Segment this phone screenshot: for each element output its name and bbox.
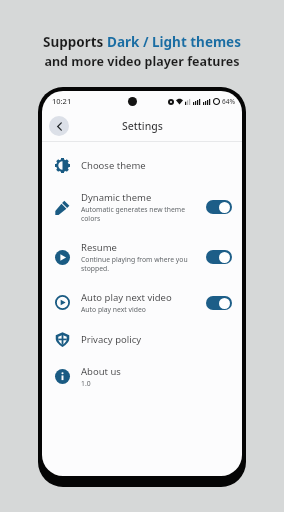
staticText: About us	[81, 365, 121, 378]
staticText: 10:21	[52, 96, 72, 106]
staticText: Privacy policy	[81, 333, 142, 346]
button[interactable]: Auto play next video	[42, 282, 242, 323]
button[interactable]: About us	[42, 356, 242, 397]
staticText: Auto play next video	[81, 291, 172, 304]
button[interactable]: Toggle setting	[206, 250, 232, 264]
button[interactable]: Privacy policy	[42, 323, 242, 356]
staticText: Choose theme	[81, 159, 146, 172]
staticText: and more video player features	[44, 53, 240, 70]
staticText: Settings	[122, 119, 163, 133]
staticText: Dark / Light themes	[107, 33, 241, 51]
button[interactable]: Back	[49, 116, 69, 136]
staticText: 64%	[222, 97, 235, 106]
button[interactable]: Dynamic theme	[42, 182, 242, 232]
button[interactable]: Resume	[42, 232, 242, 282]
staticText: Auto play next video	[81, 305, 146, 314]
staticText: Resume	[81, 241, 117, 254]
button[interactable]: Toggle setting	[206, 200, 232, 214]
staticText: Continue playing from where you stopped.	[81, 255, 188, 273]
staticText: Dynamic theme	[81, 191, 152, 204]
staticText: Supports	[43, 33, 107, 51]
staticText: Automatic generates new theme colors	[81, 205, 186, 223]
button[interactable]: Choose theme	[42, 149, 242, 182]
staticText: 1.0	[81, 379, 91, 388]
button[interactable]: Toggle setting	[206, 296, 232, 310]
